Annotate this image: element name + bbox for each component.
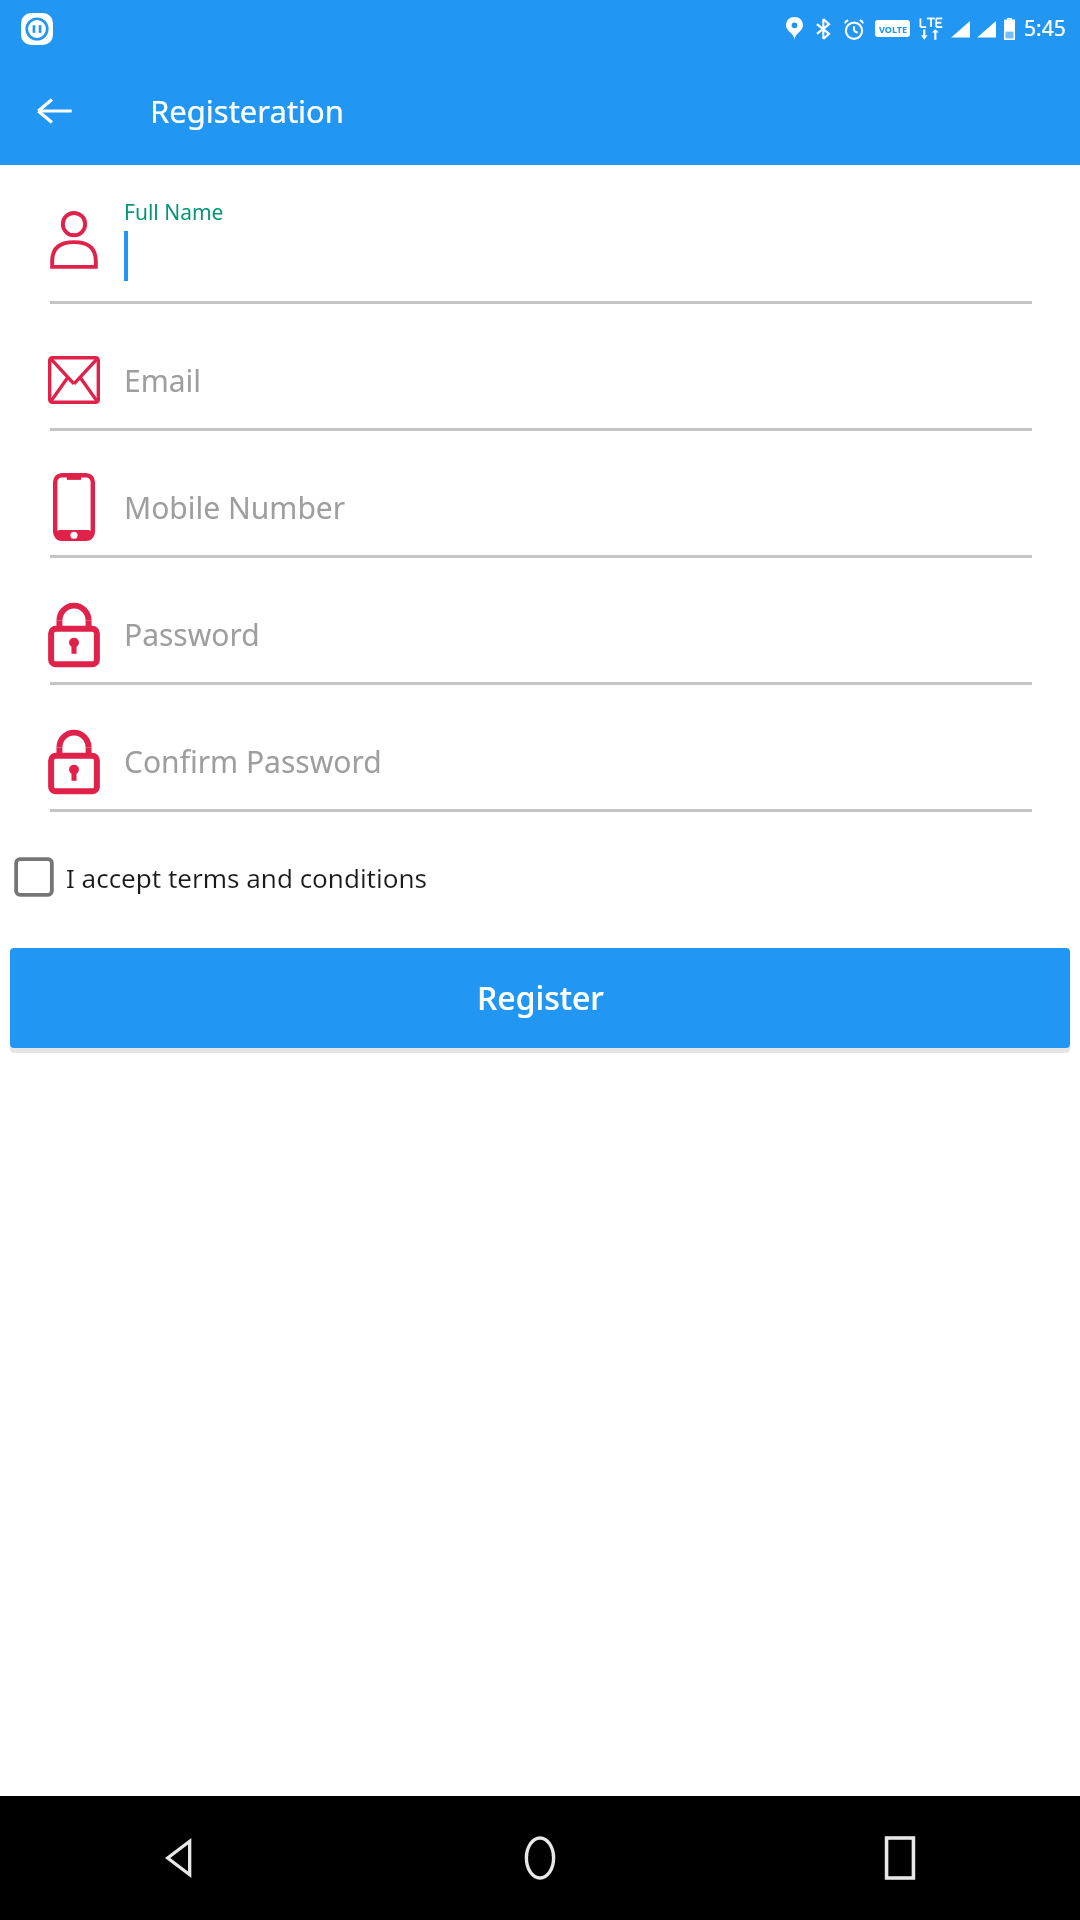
- staticText: Mobile Number: [124, 487, 346, 528]
- button[interactable]: Register: [10, 948, 1070, 1048]
- staticText: Confirm Password: [124, 741, 382, 782]
- button[interactable]: Confirm Password: [0, 723, 1080, 799]
- staticText: Registeration: [150, 90, 345, 132]
- staticText: Password: [124, 614, 260, 655]
- staticText: I accept terms and conditions: [66, 860, 427, 895]
- staticText: Email: [124, 360, 202, 401]
- button[interactable]: Back: [0, 1796, 360, 1920]
- staticText: VOLTE: [879, 23, 907, 35]
- button[interactable]: Recent apps: [720, 1796, 1080, 1920]
- button[interactable]: Password: [0, 596, 1080, 672]
- button[interactable]: Mobile Number: [0, 469, 1080, 545]
- button[interactable]: Back: [24, 80, 86, 142]
- button[interactable]: Full Name: [0, 189, 1080, 289]
- staticText: Full Name: [124, 198, 224, 227]
- button[interactable]: I accept terms and conditions: [0, 852, 1080, 902]
- staticText: 5:45: [1024, 14, 1066, 43]
- button[interactable]: Home: [360, 1796, 720, 1920]
- staticText: Register: [477, 976, 604, 1020]
- button[interactable]: Email: [0, 342, 1080, 418]
